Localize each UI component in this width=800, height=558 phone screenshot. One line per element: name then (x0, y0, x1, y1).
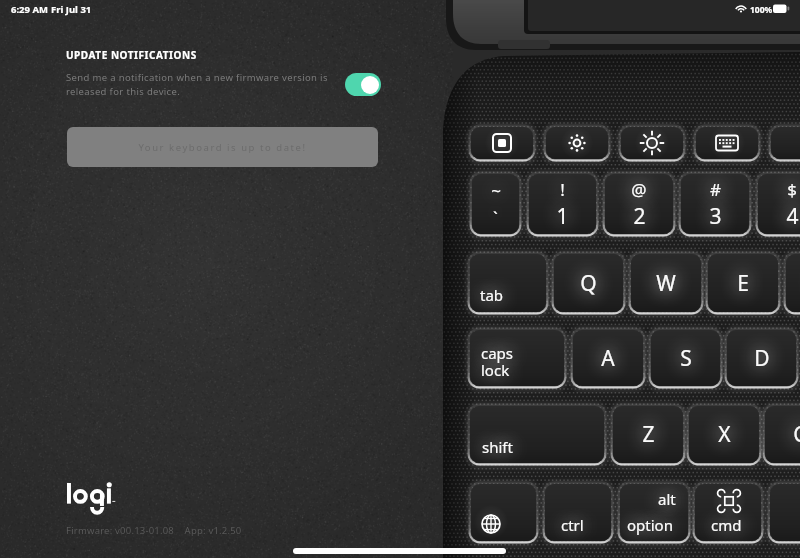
staticText: cmd (711, 515, 742, 535)
staticText: E (737, 269, 749, 298)
staticText: 6:29 AM (11, 3, 48, 16)
staticText: ` (493, 206, 498, 229)
staticText: ! (560, 178, 565, 201)
staticText: Fri Jul 31 (51, 3, 92, 16)
staticText: 3 (709, 202, 722, 231)
staticText: Send me a notification when a new firmwa… (66, 71, 366, 98)
staticText: ctrl (561, 515, 584, 535)
staticText: Firmware: v00.13-01.08 App: v1.2.50 (66, 524, 242, 537)
staticText: 4 (786, 202, 799, 231)
staticText: # (710, 178, 721, 201)
staticText: @ (631, 178, 647, 201)
staticText: Your keyboard is up to date! (138, 141, 307, 154)
staticText: 2 (633, 202, 646, 231)
staticText: 100% (750, 4, 773, 16)
button[interactable]: Your keyboard is up to date! (67, 127, 378, 167)
button[interactable]: Update notifications toggle, on (345, 73, 381, 96)
staticText: lock (481, 360, 510, 380)
staticText: C (793, 420, 800, 449)
staticText: tab (480, 285, 504, 305)
staticText: 1 (556, 202, 569, 231)
staticText: $ (787, 178, 797, 201)
staticText: W (656, 269, 676, 298)
staticText: Q (580, 269, 597, 298)
staticText: D (754, 344, 770, 373)
staticText: alt (658, 489, 676, 509)
staticText: A (601, 344, 615, 373)
staticText: caps (481, 343, 514, 363)
staticText: shift (482, 437, 513, 457)
staticText: S (680, 344, 692, 373)
staticText: UPDATE NOTIFICATIONS (66, 48, 197, 62)
staticText: option (627, 515, 673, 535)
staticText: X (718, 420, 731, 449)
staticText: ~ (491, 179, 501, 202)
staticText: Z (642, 420, 655, 449)
